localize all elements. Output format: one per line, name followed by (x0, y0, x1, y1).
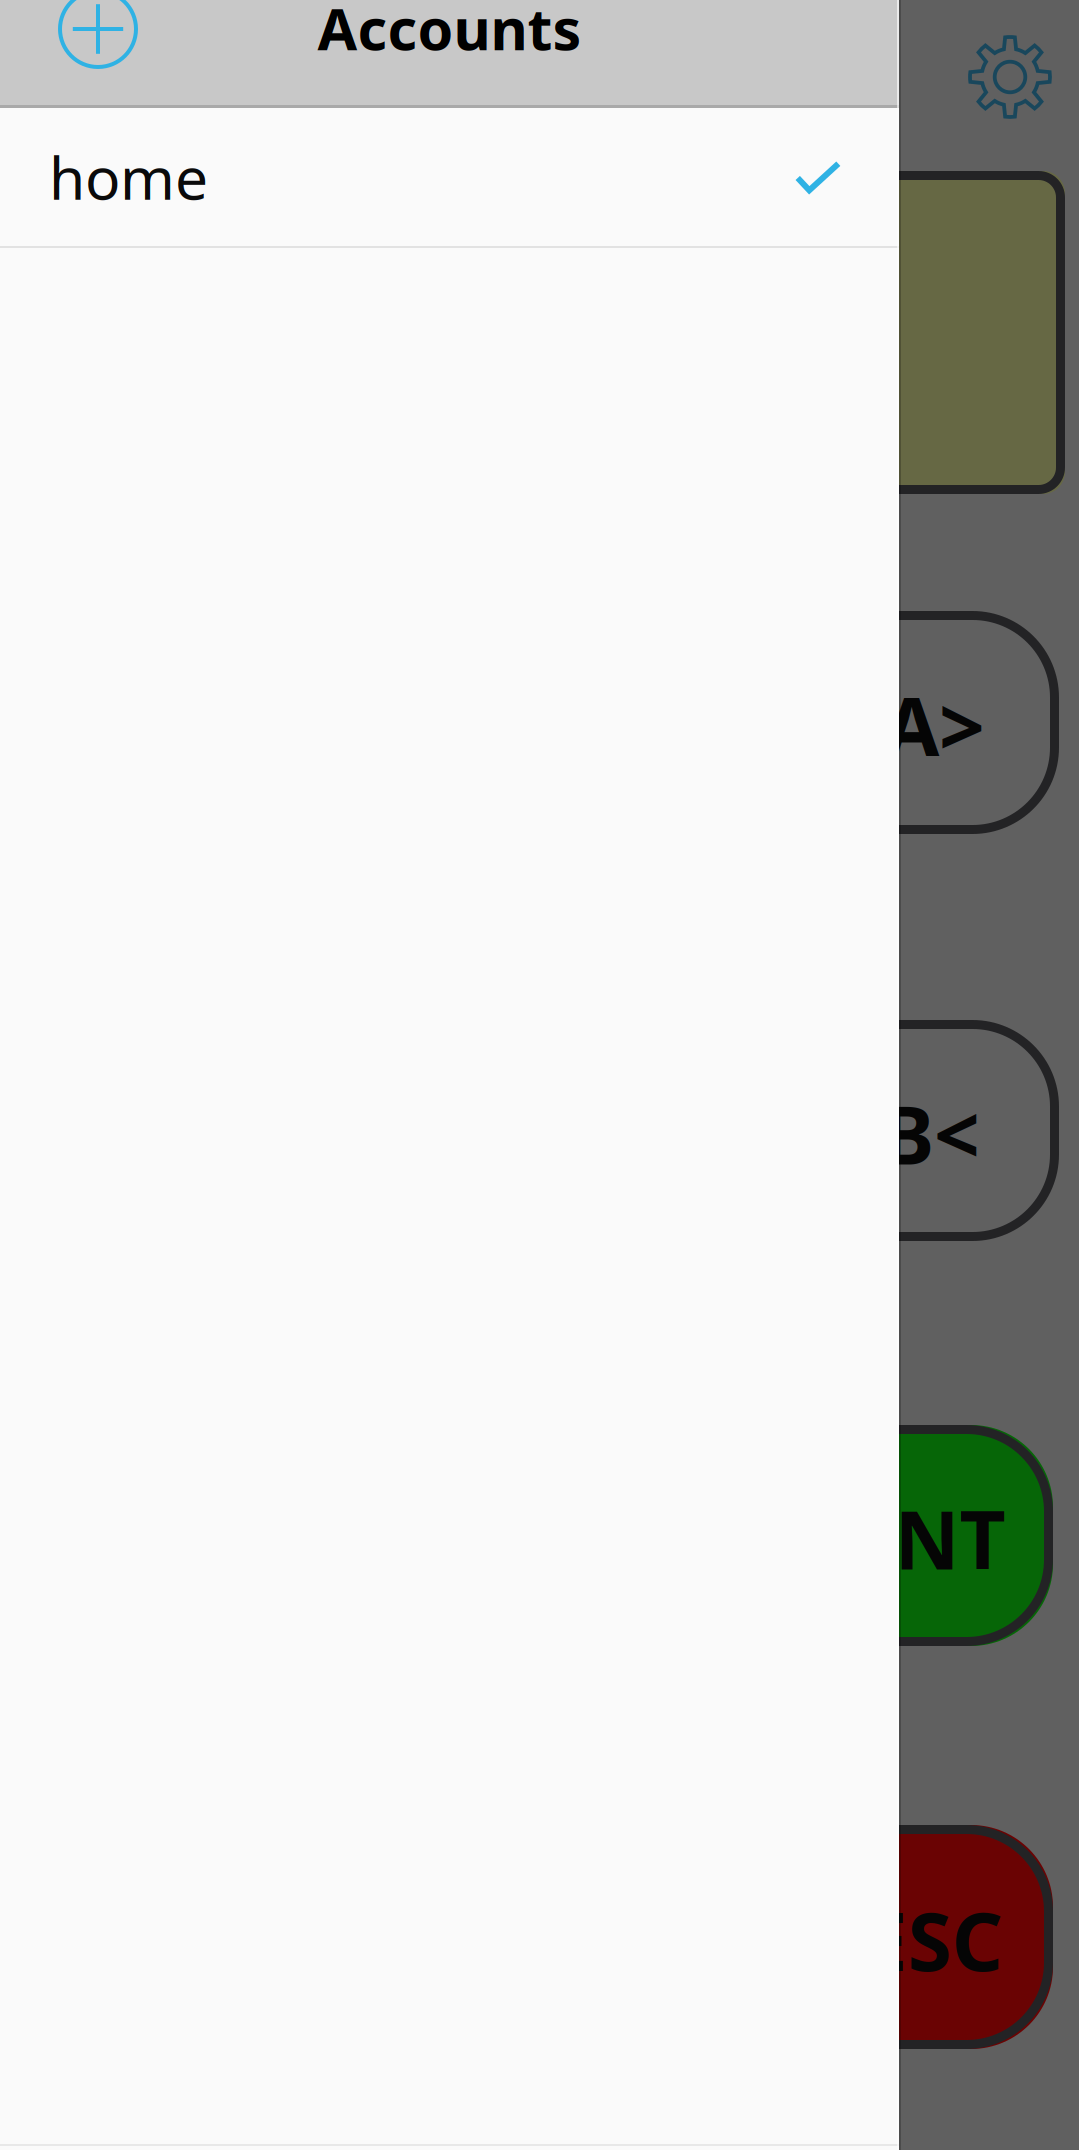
staticText: A> (884, 672, 985, 779)
button[interactable]: Settings (950, 17, 1070, 137)
button[interactable]: B< (804, 1020, 1059, 1241)
button[interactable]: home (0, 108, 899, 246)
button[interactable]: Add account (43, 0, 153, 84)
button[interactable]: A> (804, 611, 1059, 834)
staticText: home (49, 138, 208, 216)
staticText: ESC (862, 1887, 1002, 1993)
staticText: Accounts (317, 0, 581, 66)
button[interactable]: ENT (800, 1425, 1053, 1646)
staticText: ENT (849, 1485, 1005, 1592)
staticText: B< (881, 1080, 980, 1187)
button[interactable]: ESC (800, 1825, 1053, 2049)
